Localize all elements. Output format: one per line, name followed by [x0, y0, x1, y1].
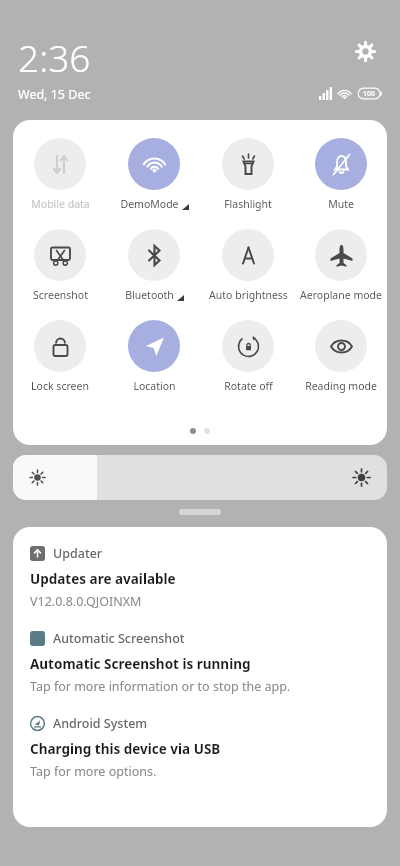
staticText: Automatic Screenshot — [53, 630, 185, 647]
button[interactable]: Android System — [13, 713, 387, 782]
staticText: Wed, 15 Dec — [18, 86, 91, 102]
staticText: Updates are available — [30, 570, 176, 588]
staticText: Updater — [53, 545, 103, 562]
staticText: 2:36 — [18, 32, 91, 82]
button[interactable]: Auto brightness — [201, 227, 295, 304]
staticText: Mobile data — [31, 197, 90, 211]
staticText: Location — [133, 379, 176, 393]
button[interactable]: Automatic Screenshot — [13, 628, 387, 697]
staticText: Screenshot — [33, 288, 88, 302]
button[interactable]: Flashlight — [201, 136, 295, 213]
button[interactable]: DemoMode — [107, 136, 201, 213]
staticText: Lock screen — [31, 379, 89, 393]
button[interactable]: Location — [107, 318, 201, 395]
staticText: Android System — [53, 715, 148, 732]
staticText: Bluetooth — [125, 288, 174, 302]
button[interactable]: Screenshot — [13, 227, 107, 304]
button[interactable]: Reading mode — [295, 318, 387, 395]
staticText: Tap for more options. — [30, 763, 157, 780]
staticText: Mute — [328, 197, 354, 211]
staticText: V12.0.8.0.QJOINXM — [30, 593, 142, 610]
button[interactable]: Mobile data — [13, 136, 107, 213]
staticText: Aeroplane mode — [300, 288, 382, 302]
staticText: Auto brightness — [209, 288, 288, 302]
staticText: Rotate off — [224, 379, 273, 393]
button[interactable]: Bluetooth — [107, 227, 201, 304]
staticText: Tap for more information or to stop the … — [30, 678, 291, 695]
button[interactable]: Rotate off — [201, 318, 295, 395]
button[interactable]: Settings — [348, 34, 382, 68]
button[interactable]: Updater — [13, 543, 387, 612]
button[interactable]: Mute — [295, 136, 387, 213]
button[interactable]: Brightness — [13, 455, 387, 500]
button[interactable]: Lock screen — [13, 318, 107, 395]
staticText: Charging this device via USB — [30, 740, 221, 758]
staticText: Flashlight — [224, 197, 272, 211]
staticText: DemoMode — [120, 197, 179, 211]
staticText: Reading mode — [305, 379, 377, 393]
button[interactable]: Aeroplane mode — [295, 227, 387, 304]
staticText: Automatic Screenshot is running — [30, 655, 251, 673]
staticText: 100 — [363, 89, 376, 99]
